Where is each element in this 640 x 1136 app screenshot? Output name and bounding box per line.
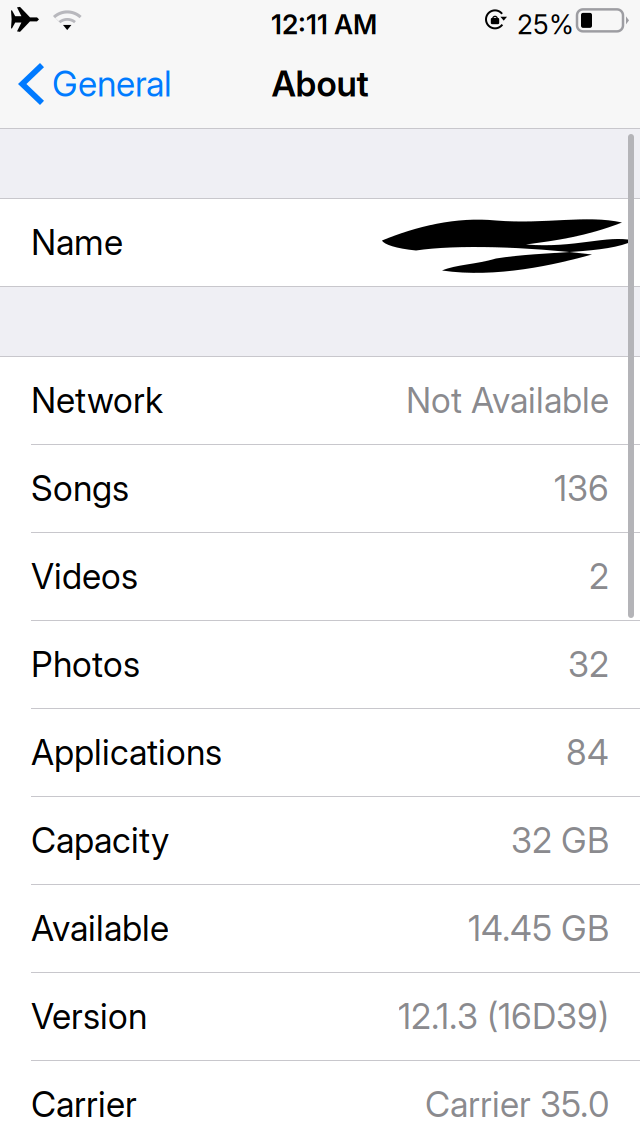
button[interactable]: Capacity — [0, 797, 640, 884]
button[interactable]: General — [0, 40, 186, 128]
staticText: Name — [31, 221, 123, 263]
button[interactable]: Carrier — [0, 1061, 640, 1136]
button[interactable]: Applications — [0, 709, 640, 796]
staticText: Not Available — [406, 379, 609, 421]
staticText: 14.45 GB — [468, 907, 609, 949]
staticText: Capacity — [31, 819, 169, 861]
staticText: 136 — [554, 467, 609, 509]
staticText: 32 — [568, 643, 609, 685]
staticText: 84 — [566, 731, 609, 773]
staticText: 2 — [589, 555, 609, 597]
staticText: Photos — [31, 643, 140, 685]
staticText: 12.1.3 (16D39) — [398, 995, 609, 1037]
staticText: Network — [31, 379, 163, 421]
staticText: About — [271, 63, 368, 105]
button[interactable]: Videos — [0, 533, 640, 620]
button[interactable]: Name — [0, 199, 640, 286]
staticText: Carrier — [31, 1083, 137, 1125]
staticText: General — [52, 63, 172, 105]
staticText: 32 GB — [511, 819, 609, 861]
staticText: Applications — [31, 731, 222, 773]
staticText: Songs — [31, 467, 129, 509]
staticText: Videos — [31, 555, 138, 597]
button[interactable]: Network — [0, 357, 640, 444]
staticText: Carrier 35.0 — [425, 1083, 609, 1125]
button[interactable]: Version — [0, 973, 640, 1060]
button[interactable]: Available — [0, 885, 640, 972]
staticText: Available — [31, 907, 169, 949]
staticText: 25% — [517, 8, 574, 41]
button[interactable]: Songs — [0, 445, 640, 532]
staticText: Version — [31, 995, 147, 1037]
button[interactable]: Photos — [0, 621, 640, 708]
staticText: 12:11 AM — [271, 8, 377, 41]
